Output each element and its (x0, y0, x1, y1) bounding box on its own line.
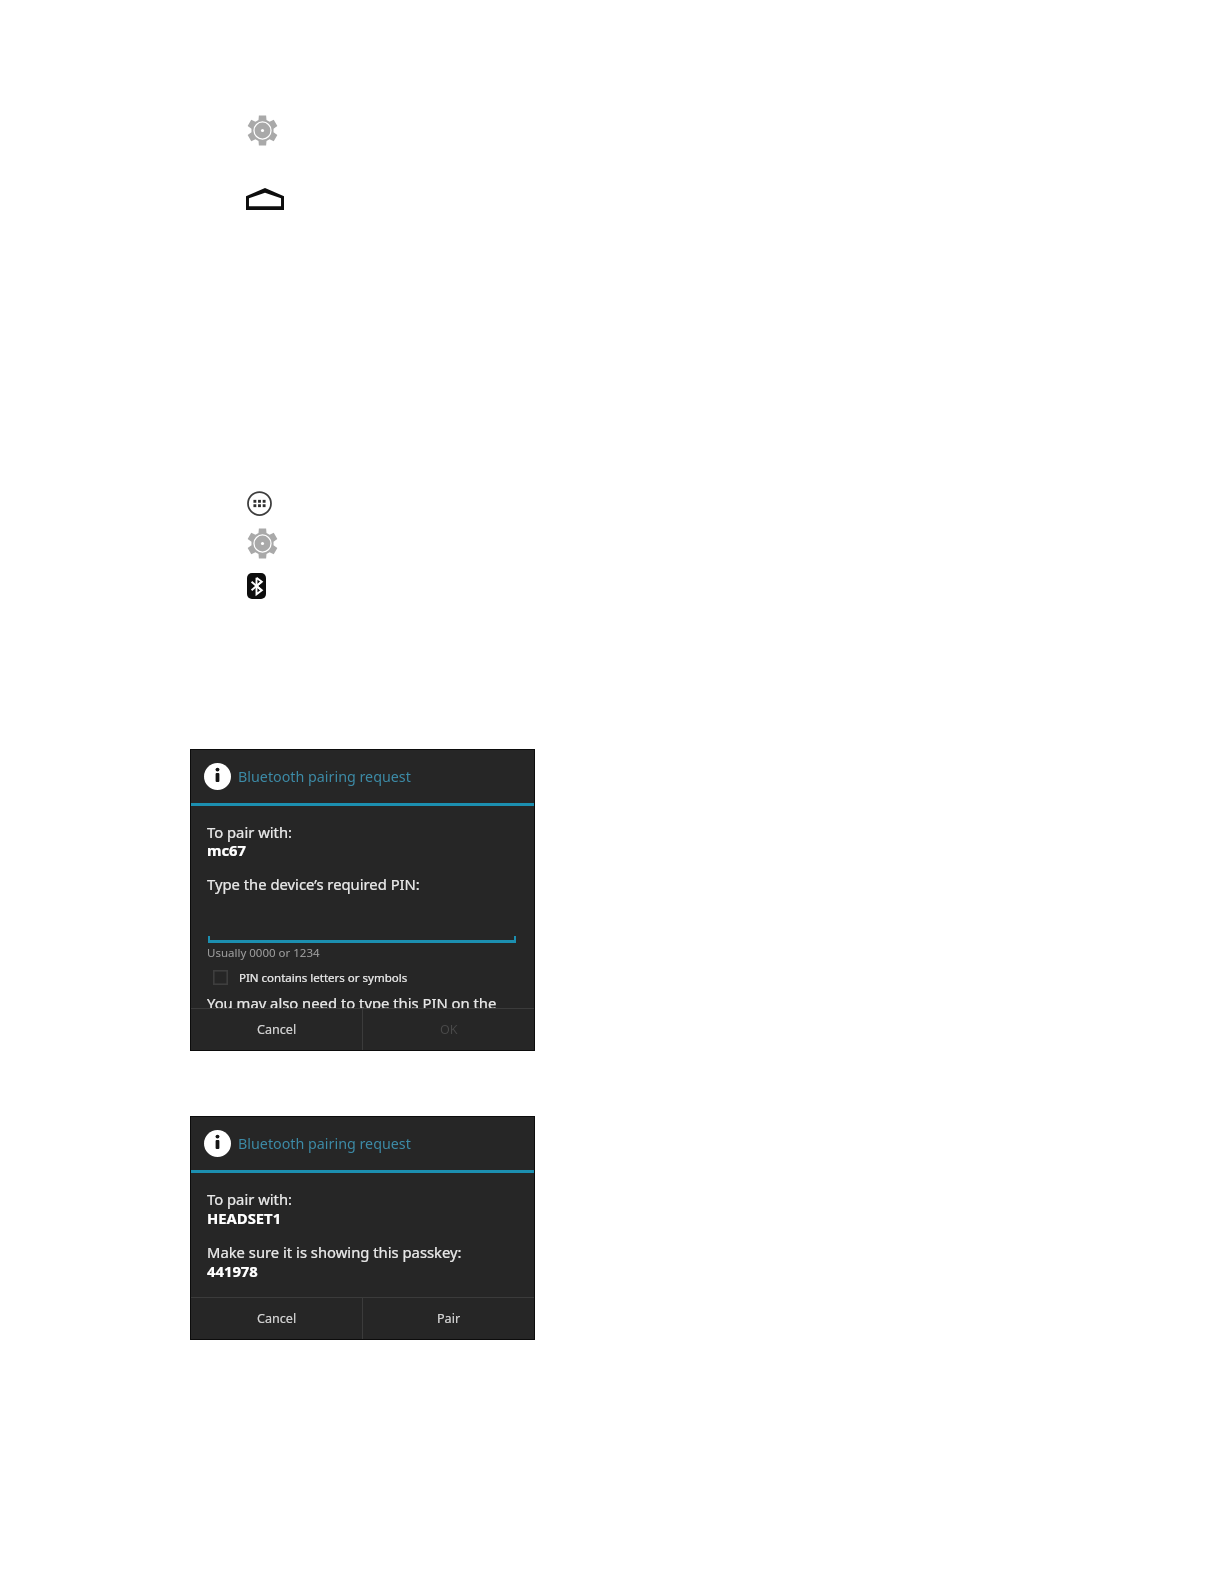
staticText: Usually 0000 or 1234 (207, 945, 320, 961)
button[interactable]: Cancel (191, 1009, 362, 1050)
button[interactable]: Settings (247, 115, 278, 146)
button[interactable]: Bluetooth (247, 573, 266, 599)
button[interactable]: Home (246, 188, 284, 210)
staticText: You may also need to type this PIN on th… (207, 993, 497, 1013)
staticText: 441978 (207, 1261, 258, 1281)
staticText: To pair with: (207, 1189, 293, 1209)
button[interactable]: Pair (363, 1298, 534, 1339)
staticText: HEADSET1 (207, 1208, 282, 1228)
button[interactable]: All apps (247, 491, 272, 516)
staticText: Make sure it is showing this passkey: (207, 1242, 462, 1262)
button[interactable]: Cancel (191, 1298, 362, 1339)
staticText: Cancel (257, 1310, 297, 1327)
button[interactable]: Settings (247, 528, 278, 559)
staticText: OK (440, 1021, 458, 1038)
staticText: PIN contains letters or symbols (239, 970, 408, 986)
staticText: Cancel (257, 1021, 297, 1038)
staticText: Bluetooth pairing request (238, 767, 411, 786)
staticText: To pair with: (207, 822, 293, 842)
staticText: Pair (437, 1310, 461, 1327)
staticText: mc67 (207, 840, 246, 860)
staticText: Bluetooth pairing request (238, 1134, 411, 1153)
staticText: Type the device’s required PIN: (207, 874, 420, 894)
